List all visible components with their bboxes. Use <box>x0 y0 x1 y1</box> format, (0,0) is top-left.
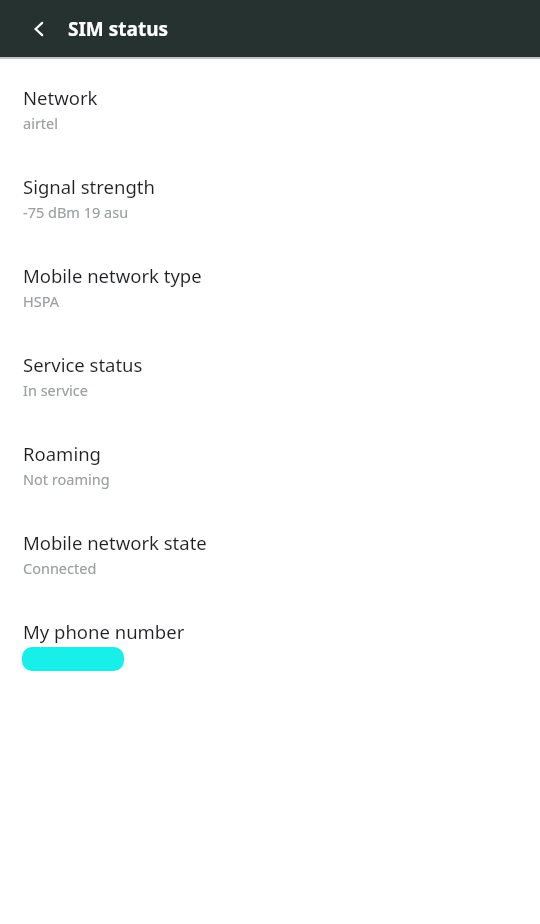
staticText: Mobile network state <box>23 530 207 555</box>
button[interactable]: Mobile network type <box>0 263 540 311</box>
staticText: Connected <box>23 558 97 578</box>
button[interactable]: Service status <box>0 352 540 400</box>
staticText: My phone number <box>23 619 185 644</box>
button[interactable]: Network <box>0 85 540 133</box>
staticText: In service <box>23 380 89 400</box>
staticText: -75 dBm 19 asu <box>23 202 129 222</box>
staticText: Signal strength <box>23 174 155 199</box>
staticText: Roaming <box>23 441 101 466</box>
button[interactable]: Signal strength <box>0 174 540 222</box>
staticText: HSPA <box>23 291 60 311</box>
staticText: Service status <box>23 352 143 377</box>
staticText: Network <box>23 85 98 110</box>
staticText: Mobile network type <box>23 263 202 288</box>
button[interactable]: My phone number <box>0 619 540 671</box>
button[interactable]: Back <box>20 9 60 49</box>
button[interactable]: Roaming <box>0 441 540 489</box>
button[interactable]: Mobile network state <box>0 530 540 578</box>
staticText: SIM status <box>68 16 169 42</box>
staticText: Not roaming <box>23 469 110 489</box>
staticText: airtel <box>23 113 59 133</box>
